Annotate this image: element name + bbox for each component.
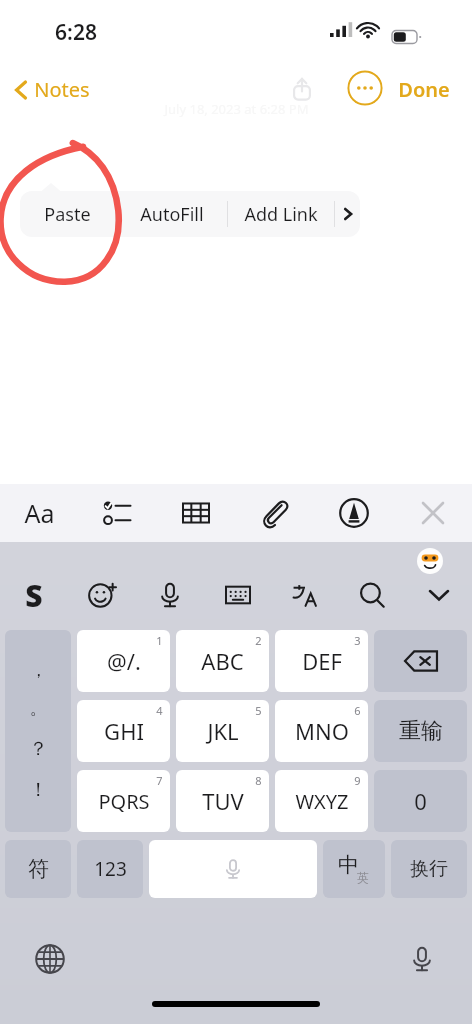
button[interactable]: Checklist — [78, 484, 156, 542]
staticText: ？ — [29, 737, 48, 761]
button[interactable]: Delete — [374, 630, 467, 692]
staticText: 重输 — [399, 717, 443, 745]
button[interactable]: AutoFill — [116, 191, 227, 237]
staticText: 3 — [354, 633, 361, 648]
staticText: 0 — [414, 786, 427, 816]
button[interactable]: Close — [393, 484, 472, 542]
staticText: 123 — [94, 856, 127, 882]
staticText: 英 — [357, 870, 369, 885]
staticText: Aa — [24, 496, 55, 530]
button[interactable]: Space, voice input — [149, 840, 317, 898]
button[interactable]: Dictation — [400, 937, 444, 981]
button[interactable]: Text format — [0, 484, 78, 542]
button[interactable]: Keyboard — [204, 568, 271, 622]
button[interactable]: Emoji — [68, 568, 136, 622]
staticText: 7 — [156, 773, 163, 788]
staticText: ABC — [201, 646, 244, 676]
button[interactable]: ABC — [176, 630, 269, 692]
button[interactable]: Hide keyboard — [405, 568, 472, 622]
button[interactable]: Shortcut — [0, 568, 68, 622]
staticText: Paste — [44, 202, 91, 227]
button[interactable]: ， — [5, 630, 71, 832]
staticText: 6:28 — [55, 18, 97, 47]
staticText: Done — [398, 76, 450, 103]
button[interactable]: Switch language — [28, 937, 72, 981]
button[interactable]: Add Link — [228, 191, 334, 237]
staticText: 。 — [30, 698, 47, 719]
staticText: TUV — [202, 786, 244, 816]
button[interactable]: 符 — [5, 840, 71, 898]
button[interactable]: Translate — [271, 568, 338, 622]
staticText: Add Link — [244, 202, 318, 227]
staticText: 符 — [28, 856, 49, 882]
staticText: 1 — [156, 633, 163, 648]
button[interactable]: Voice input — [136, 568, 204, 622]
button[interactable]: Done — [394, 74, 454, 105]
button[interactable]: Sticker — [417, 548, 443, 574]
button[interactable]: PQRS — [77, 770, 170, 832]
button[interactable]: More — [335, 191, 360, 237]
button[interactable]: Chinese English toggle — [323, 840, 385, 898]
staticText: ！ — [29, 778, 48, 802]
staticText: 9 — [354, 773, 361, 788]
staticText: MNO — [295, 716, 349, 746]
staticText: ， — [30, 660, 47, 681]
staticText: JKL — [207, 716, 239, 746]
button[interactable]: Table — [156, 484, 235, 542]
button[interactable]: GHI — [77, 700, 170, 762]
button[interactable]: DEF — [275, 630, 368, 692]
staticText: 5 — [255, 703, 262, 718]
button[interactable]: More options — [347, 70, 383, 106]
button[interactable]: WXYZ — [275, 770, 368, 832]
button[interactable]: Search — [338, 568, 405, 622]
button[interactable]: @/. — [77, 630, 170, 692]
button[interactable]: Paste — [20, 191, 115, 237]
button[interactable]: Share — [283, 70, 321, 108]
button[interactable]: 重输 — [374, 700, 467, 762]
staticText: Notes — [34, 76, 90, 103]
staticText: 6 — [354, 703, 361, 718]
staticText: S — [25, 575, 43, 616]
button[interactable]: Attach — [235, 484, 314, 542]
button[interactable]: MNO — [275, 700, 368, 762]
staticText: 8 — [255, 773, 262, 788]
button[interactable]: Markup — [314, 484, 393, 542]
staticText: 2 — [255, 633, 262, 648]
staticText: PQRS — [98, 788, 150, 815]
staticText: WXYZ — [295, 788, 349, 815]
button[interactable]: 0 — [374, 770, 467, 832]
button[interactable]: TUV — [176, 770, 269, 832]
button[interactable]: 123 — [77, 840, 143, 898]
staticText: DEF — [302, 646, 342, 676]
staticText: 4 — [156, 703, 163, 718]
staticText: AutoFill — [140, 202, 204, 227]
staticText: 换行 — [410, 857, 448, 881]
staticText: @/. — [107, 646, 141, 676]
button[interactable]: Notes — [8, 74, 96, 105]
button[interactable]: JKL — [176, 700, 269, 762]
staticText: 中 — [338, 852, 359, 878]
staticText: GHI — [104, 716, 144, 746]
button[interactable]: 换行 — [391, 840, 467, 898]
